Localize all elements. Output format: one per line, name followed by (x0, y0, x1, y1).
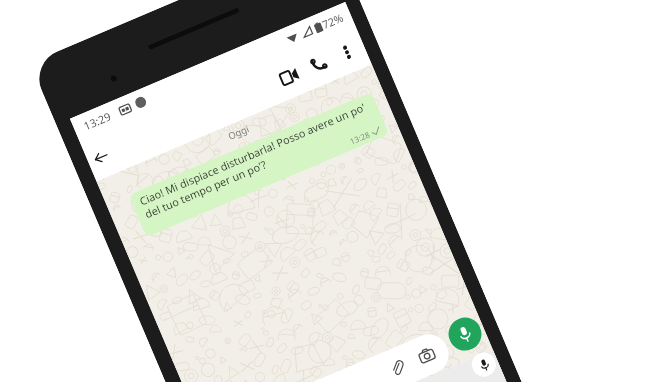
staticText: 13:28 (348, 128, 372, 147)
staticText: Ciao! Mi dispiace disturbarla! Posso ave… (137, 99, 373, 222)
button[interactable]: More options (329, 34, 365, 71)
button[interactable]: Video call (267, 55, 310, 98)
button[interactable]: Record voice message (443, 312, 487, 356)
button[interactable]: Ciao! Mi dispiace disturbarla! Posso ave… (128, 92, 389, 237)
button[interactable]: Attach (388, 358, 406, 377)
button[interactable]: Camera (417, 346, 437, 365)
staticText: Oggi (226, 122, 251, 143)
button[interactable]: Voice input (468, 349, 500, 380)
button[interactable]: Back (85, 141, 116, 173)
button[interactable]: Attach (188, 328, 455, 382)
staticText: 13:29 (81, 108, 114, 133)
button[interactable]: Voice call (297, 42, 340, 85)
staticText: 72% (320, 10, 346, 32)
